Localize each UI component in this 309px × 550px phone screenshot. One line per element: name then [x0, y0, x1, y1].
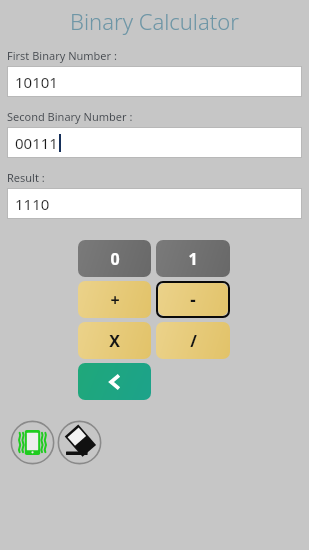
button[interactable]: 0 — [78, 240, 151, 277]
staticText: First Binary Number : — [7, 48, 117, 63]
staticText: 1110 — [15, 194, 50, 214]
button[interactable]: / — [156, 322, 230, 359]
staticText: 00111 — [15, 133, 58, 153]
staticText: / — [190, 330, 197, 352]
button[interactable]: 00111 — [7, 127, 302, 158]
staticText: Result : — [7, 170, 45, 185]
staticText: - — [190, 288, 196, 311]
staticText: Second Binary Number : — [7, 109, 133, 124]
button[interactable]: - — [158, 283, 228, 316]
button[interactable]: 1110 — [7, 188, 302, 219]
button[interactable]: Clear — [57, 420, 102, 465]
button[interactable]: Backspace — [78, 363, 151, 400]
staticText: Binary Calculator — [70, 6, 239, 36]
button[interactable]: 1 — [156, 240, 230, 277]
button[interactable]: X — [78, 322, 151, 359]
staticText: X — [109, 330, 120, 352]
staticText: 0 — [110, 248, 120, 270]
staticText: + — [110, 289, 120, 311]
button[interactable]: 10101 — [7, 66, 302, 97]
button[interactable]: + — [78, 281, 151, 318]
staticText: 1 — [188, 248, 198, 270]
staticText: 10101 — [15, 72, 58, 92]
button[interactable]: Vibrate — [10, 420, 55, 465]
